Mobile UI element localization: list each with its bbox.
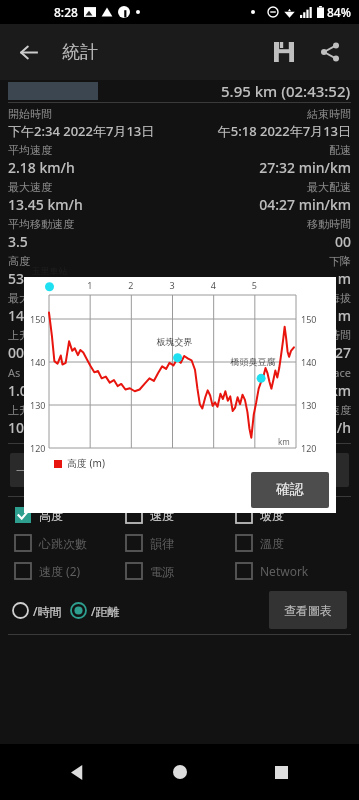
staticText: 00	[179, 232, 351, 251]
staticText: 坡度	[260, 508, 284, 523]
staticText: 14	[8, 306, 179, 325]
staticText: 結束時間	[179, 107, 351, 121]
button[interactable]: 查看圖表	[269, 591, 347, 629]
staticText: /時間	[33, 603, 62, 619]
staticText: 04:27 min/km	[179, 195, 351, 214]
staticText: m	[179, 306, 351, 325]
staticText: 移動時間	[179, 217, 351, 231]
staticText: 00	[8, 343, 179, 362]
staticText: 65.50 m/h	[179, 418, 351, 437]
staticText: 開始時間	[8, 107, 179, 121]
staticText: m	[179, 269, 351, 288]
button[interactable]: 高度	[14, 501, 125, 529]
staticText: 53	[8, 269, 179, 288]
staticText: 最大	[8, 291, 179, 305]
button[interactable]: Back	[6, 29, 52, 75]
button[interactable]: Recents	[257, 748, 305, 796]
staticText: 速度	[150, 508, 174, 523]
staticText: Network	[260, 563, 309, 579]
staticText: 2.18 km/h	[8, 158, 179, 177]
button[interactable]: 心跳次數	[14, 529, 125, 557]
button[interactable]: Network	[235, 557, 345, 585]
button[interactable]: Share	[307, 29, 353, 75]
button[interactable]: Save	[261, 29, 307, 75]
button[interactable]: 確認	[251, 472, 329, 508]
staticText: 平均移動速度	[8, 217, 179, 231]
button[interactable]: 速度 (2)	[14, 557, 125, 585]
button[interactable]: 溫度	[235, 529, 345, 557]
staticText: 5.95 km (02:43:52)	[221, 81, 351, 101]
staticText: 下降	[179, 254, 351, 268]
staticText: 速度 (2)	[39, 563, 81, 579]
button[interactable]: 速度	[125, 501, 235, 529]
button[interactable]: 坡度	[235, 501, 345, 529]
staticText: 平均速度	[8, 143, 179, 157]
staticText: /距離	[91, 603, 120, 619]
staticText: 配速	[179, 143, 351, 157]
staticText: 溫度	[260, 536, 284, 551]
staticText: 3.5	[8, 232, 179, 251]
staticText: km	[179, 381, 351, 400]
staticText: 最大配速	[179, 180, 351, 194]
staticText: 13.45 km/h	[8, 195, 179, 214]
staticText: 海拔	[179, 291, 351, 305]
staticText: 確認	[276, 481, 304, 499]
staticText: 27:32 min/km	[179, 158, 351, 177]
staticText: 詳細	[295, 462, 321, 478]
staticText: 午5:18 2022年7月13日	[179, 122, 351, 140]
button[interactable]: /時間	[12, 598, 62, 623]
staticText: 下午2:34 2022年7月13日	[8, 122, 179, 140]
staticText: 統計	[62, 41, 98, 64]
button[interactable]: 一圈的距離 (1.00 KM)	[10, 453, 158, 487]
staticText: 最大速度	[8, 180, 179, 194]
staticText: 一圈的距離 (1.00 KM)	[16, 462, 135, 478]
button[interactable]: 電源	[125, 557, 235, 585]
staticText: 上升	[8, 403, 179, 417]
staticText: 時間	[179, 328, 351, 342]
button[interactable]: /距離	[70, 598, 120, 623]
staticText: 高度	[39, 508, 63, 523]
staticText: 高度	[8, 254, 179, 268]
staticText: ace	[179, 365, 351, 380]
staticText: 103.43 m/h	[8, 418, 179, 437]
button[interactable]: Home	[156, 748, 204, 796]
staticText: 8:28	[54, 4, 78, 20]
staticText: 速度	[179, 403, 351, 417]
staticText: 1.0	[8, 381, 179, 400]
staticText: 電源	[150, 564, 174, 579]
staticText: 韻律	[150, 536, 174, 551]
staticText: 心跳次數	[39, 536, 87, 551]
button[interactable]: 韻律	[125, 529, 235, 557]
staticText: 上升	[8, 328, 179, 342]
staticText: As	[8, 365, 179, 380]
button[interactable]: 詳細	[267, 453, 349, 487]
staticText: 查看圖表	[284, 603, 332, 618]
staticText: 27	[179, 343, 351, 362]
staticText: 84%	[327, 4, 351, 20]
button[interactable]: Back	[54, 748, 102, 796]
